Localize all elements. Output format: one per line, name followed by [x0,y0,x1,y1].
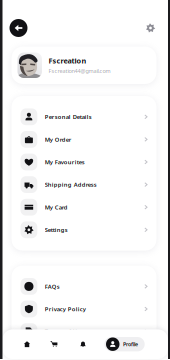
button[interactable]: Notifications [68,332,97,356]
button[interactable]: Profile [104,337,145,351]
staticText: Personal Details [45,113,92,121]
button[interactable]: Cart [39,332,68,356]
button[interactable]: My Favourites [11,151,156,173]
staticText: Terms of Use [45,328,83,336]
button[interactable]: My Card [11,196,156,218]
staticText: FAQs [45,282,60,290]
staticText: My Order [45,135,72,143]
button[interactable]: Terms of Use [11,320,156,343]
staticText: Settings [45,226,68,234]
staticText: Shipping Address [45,181,97,189]
staticText: Privacy Policy [45,305,86,313]
staticText: Fscreation [48,56,86,66]
button[interactable]: Back [9,19,27,37]
staticText: My Card [45,203,68,211]
staticText: Profile [123,341,138,348]
staticText: My Favourites [45,158,85,166]
staticText: Fscreation44@gmail.com [48,67,110,75]
button[interactable]: Settings [11,218,156,241]
button[interactable]: My Order [11,128,156,151]
button[interactable]: Settings [142,20,158,36]
button[interactable]: FAQs [11,275,156,298]
button[interactable]: Home [14,332,39,356]
button[interactable]: Fscreation [11,46,156,84]
button[interactable]: Shipping Address [11,173,156,196]
button[interactable]: Privacy Policy [11,298,156,320]
button[interactable]: Personal Details [11,105,156,128]
